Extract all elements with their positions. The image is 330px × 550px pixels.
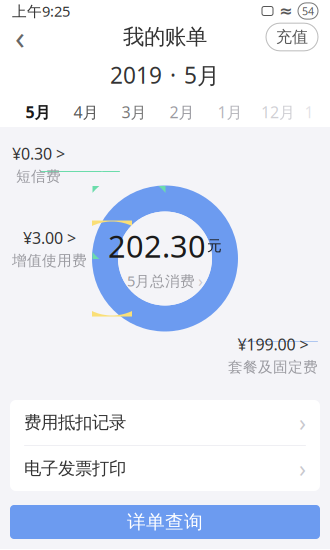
staticText: 12月	[261, 101, 295, 123]
staticText: ¥0.30 >	[12, 143, 65, 164]
staticText: 54	[302, 4, 314, 18]
staticText: 1月	[217, 101, 242, 123]
button[interactable]: 5月	[14, 97, 62, 127]
staticText: 增值使用费	[12, 251, 87, 269]
button[interactable]: 12月	[254, 97, 302, 127]
staticText: 2月	[169, 101, 194, 123]
staticText: ›	[299, 453, 306, 483]
staticText: 3月	[121, 101, 146, 123]
staticText: 元	[207, 237, 222, 255]
button[interactable]: 详单查询	[10, 505, 320, 539]
staticText: 电子发票打印	[24, 458, 126, 479]
staticText: ¥3.00 >	[23, 227, 76, 248]
staticText: 详单查询	[127, 510, 203, 533]
staticText: 充值	[276, 27, 308, 47]
staticText: ¥199.00 >	[237, 334, 308, 355]
staticText: 5月	[25, 101, 50, 123]
button[interactable]: 返回	[0, 21, 40, 53]
button[interactable]: 充值	[266, 23, 318, 51]
button[interactable]: 1月	[206, 97, 254, 127]
button[interactable]: 3月	[110, 97, 158, 127]
staticText: 5月总消费	[127, 271, 195, 291]
staticText: ≈	[279, 2, 292, 20]
button[interactable]: 电子发票打印	[10, 446, 320, 491]
staticText: 套餐及固定费	[228, 358, 318, 376]
staticText: 我的账单	[123, 24, 207, 50]
button[interactable]: 费用抵扣记录	[10, 400, 320, 445]
staticText: ›	[198, 270, 203, 291]
staticText: 1	[304, 101, 313, 123]
button[interactable]: 5月总消费	[127, 270, 203, 291]
staticText: 5月	[184, 60, 220, 90]
staticText: 短信费	[16, 167, 61, 185]
staticText: ‹	[15, 16, 25, 58]
button[interactable]: 2月	[158, 97, 206, 127]
staticText: 202.30	[108, 225, 206, 266]
staticText: 2019	[110, 60, 162, 90]
staticText: 4月	[73, 101, 98, 123]
staticText: ›	[299, 407, 306, 437]
staticText: 费用抵扣记录	[24, 412, 126, 433]
staticText: ·	[170, 60, 176, 90]
button[interactable]: 4月	[62, 97, 110, 127]
staticText: 上午9:25	[12, 1, 70, 21]
